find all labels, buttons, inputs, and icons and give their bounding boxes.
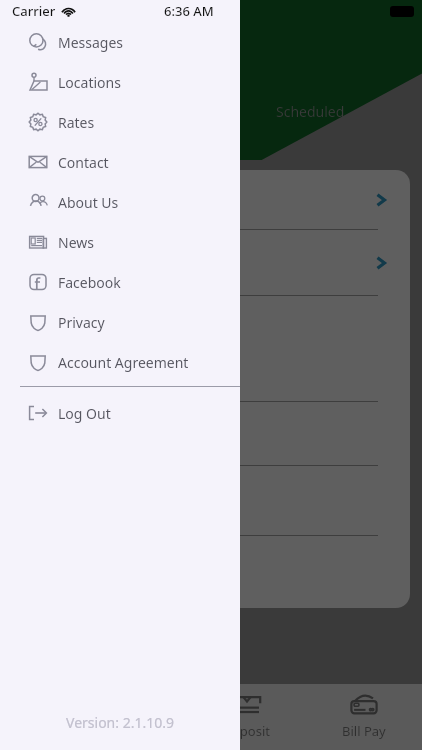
button[interactable]: About Us [0,182,240,222]
button[interactable]: News [0,222,240,262]
button[interactable] [8,466,410,536]
staticText: Log Out [58,404,111,423]
button[interactable]: Locations [0,62,240,102]
staticText: Bill Pay [342,722,386,740]
button[interactable]: Messages [0,22,240,62]
staticText: Rates [58,113,95,132]
button[interactable]: Privacy [0,302,240,342]
button[interactable]: Open [8,230,410,296]
button[interactable]: Open [8,170,410,230]
other: Open [374,193,388,207]
staticText: Privacy [58,313,105,332]
button[interactable]: Deposit [188,684,305,750]
staticText: Deposit [223,722,270,740]
staticText: Version: 2.1.10.9 [66,713,174,732]
staticText: Contact [58,153,109,172]
button[interactable]: Contact [0,142,240,182]
staticText: Messages [58,33,124,52]
staticText: Carrier [12,2,56,20]
staticText: Locations [58,73,121,92]
staticText: Facebook [58,273,121,292]
staticText: About Us [58,193,119,212]
other: Battery [390,6,414,17]
staticText: Scheduled [276,102,345,121]
button[interactable]: Account Agreement [0,342,240,382]
button[interactable]: Bill Pay [305,684,422,750]
staticText: 6:36 AM [164,2,214,20]
button[interactable]: Scheduled [248,84,418,138]
button[interactable]: Rates [0,102,240,142]
staticText: Account Agreement [58,353,189,372]
button[interactable]: Log Out [0,393,240,433]
button[interactable] [8,296,410,402]
button[interactable] [8,402,410,466]
button[interactable]: Facebook [0,262,240,302]
other: Open [374,256,388,270]
staticText: News [58,233,94,252]
